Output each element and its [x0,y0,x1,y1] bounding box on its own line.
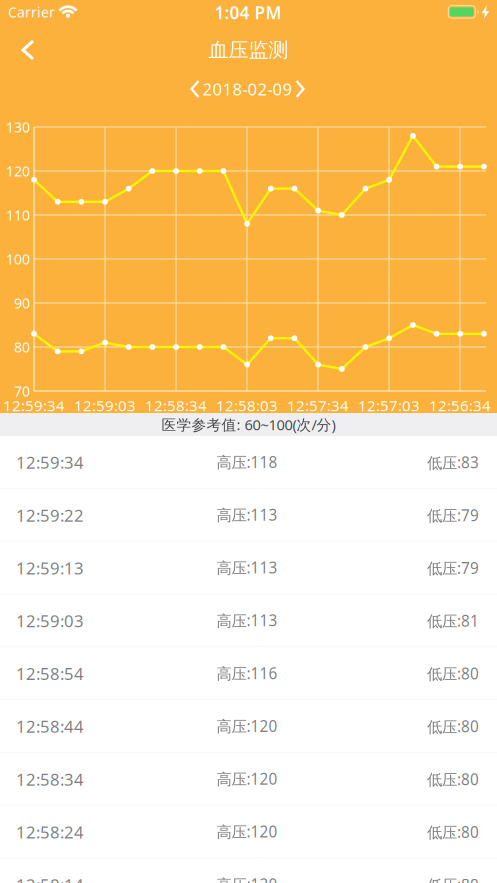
staticText: 1:04 PM [214,1,281,24]
staticText: 低压:79 [427,558,479,578]
staticText: 12:58:14 [16,873,84,883]
staticText: 130 [6,117,30,137]
staticText: 12:58:34 [16,768,84,790]
staticText: 高压:120 [216,768,277,789]
staticText: 2018-02-09 [202,78,292,100]
staticText: 12:59:03 [74,395,136,416]
staticText: 高压:116 [216,663,277,684]
staticText: 低压:81 [427,610,479,631]
staticText: 高压:120 [216,874,277,883]
staticText: 12:59:13 [16,557,84,579]
staticText: 12:56:34 [429,395,491,416]
staticText: 低压:80 [427,663,479,684]
staticText: 12:58:54 [16,662,84,685]
staticText: 100 [6,249,30,269]
staticText: 低压:80 [427,874,479,883]
staticText: 120 [6,161,30,181]
staticText: 12:59:34 [16,451,84,474]
staticText: 12:58:03 [216,395,278,416]
staticText: 12:58:34 [145,395,207,416]
staticText: 低压:80 [427,822,479,842]
staticText: 高压:118 [216,452,277,472]
staticText: 80 [14,337,30,357]
staticText: 血压监测 [208,37,288,63]
staticText: 医学参考值: 60~100(次/分) [161,415,335,434]
staticText: 低压:80 [427,716,479,737]
staticText: 70 [14,381,30,401]
staticText: 12:57:03 [358,395,420,416]
staticText: 高压:113 [216,504,277,525]
staticText: 90 [14,293,30,313]
staticText: 高压:113 [216,557,277,578]
staticText: 110 [6,205,30,225]
button[interactable]: Next day [291,78,309,100]
button[interactable]: Previous day [186,78,204,100]
staticText: 12:58:24 [16,821,84,843]
staticText: 12:58:44 [16,715,84,738]
staticText: 高压:113 [216,610,277,631]
staticText: 高压:120 [216,716,277,736]
staticText: 12:59:03 [16,609,84,632]
staticText: 12:59:34 [3,395,65,416]
staticText: 低压:79 [427,505,479,526]
button[interactable]: Back [8,28,52,72]
staticText: 12:57:34 [287,395,349,416]
staticText: 12:59:22 [16,504,84,526]
staticText: Carrier [8,2,55,22]
staticText: 高压:120 [216,821,277,842]
staticText: 低压:80 [427,769,479,790]
staticText: 低压:83 [427,452,479,473]
